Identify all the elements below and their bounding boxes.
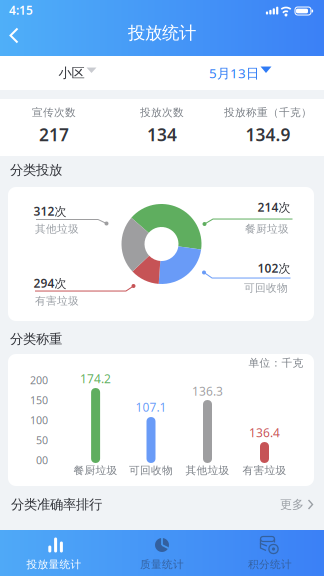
staticText: 00 bbox=[36, 453, 48, 467]
staticText: 134.9 bbox=[245, 123, 290, 146]
staticText: 50 bbox=[36, 433, 48, 447]
staticText: 单位：千克 bbox=[248, 356, 303, 369]
button[interactable]: Back bbox=[2, 21, 30, 49]
staticText: 分类称重 bbox=[10, 331, 62, 347]
button[interactable]: 投放量统计 bbox=[0, 0, 324, 576]
staticText: 其他垃圾 bbox=[35, 222, 79, 235]
staticText: 100 bbox=[30, 413, 48, 427]
staticText: 107.1 bbox=[135, 399, 166, 415]
button[interactable]: 分类准确率排行 bbox=[0, 489, 324, 519]
staticText: 134 bbox=[147, 123, 177, 146]
staticText: 174.2 bbox=[80, 370, 111, 386]
staticText: 其他垃圾 bbox=[185, 464, 229, 477]
staticText: 294次 bbox=[33, 275, 66, 291]
staticText: 可回收物 bbox=[244, 281, 288, 294]
staticText: 小区 bbox=[58, 65, 84, 81]
staticText: 更多 bbox=[280, 497, 304, 512]
staticText: 有害垃圾 bbox=[242, 464, 286, 477]
staticText: 质量统计 bbox=[140, 558, 184, 571]
staticText: 200 bbox=[30, 373, 48, 387]
staticText: 可回收物 bbox=[129, 464, 173, 477]
staticText: 150 bbox=[30, 393, 48, 407]
staticText: 312次 bbox=[33, 203, 66, 219]
button[interactable]: 小区 bbox=[10, 56, 150, 90]
button[interactable]: 积分统计 bbox=[0, 0, 324, 576]
staticText: 5月13日 bbox=[209, 64, 259, 82]
staticText: 102次 bbox=[257, 260, 290, 276]
staticText: 分类准确率排行 bbox=[11, 496, 102, 513]
staticText: 217 bbox=[39, 123, 69, 146]
staticText: 4:15 bbox=[9, 2, 33, 18]
staticText: 投放称重（千克） bbox=[224, 106, 312, 119]
staticText: 214次 bbox=[257, 199, 290, 215]
staticText: 餐厨垃圾 bbox=[245, 222, 289, 235]
staticText: 投放统计 bbox=[128, 22, 196, 44]
staticText: 136.3 bbox=[192, 383, 223, 399]
staticText: 积分统计 bbox=[248, 558, 292, 571]
staticText: 投放量统计 bbox=[26, 558, 81, 571]
button[interactable]: 质量统计 bbox=[0, 0, 324, 576]
staticText: 有害垃圾 bbox=[35, 294, 79, 307]
button[interactable]: 5月13日 bbox=[173, 56, 313, 90]
staticText: 分类投放 bbox=[10, 162, 62, 178]
staticText: 投放次数 bbox=[140, 106, 184, 119]
staticText: 宣传次数 bbox=[32, 106, 76, 119]
staticText: 136.4 bbox=[249, 424, 280, 440]
staticText: 餐厨垃圾 bbox=[74, 464, 118, 477]
